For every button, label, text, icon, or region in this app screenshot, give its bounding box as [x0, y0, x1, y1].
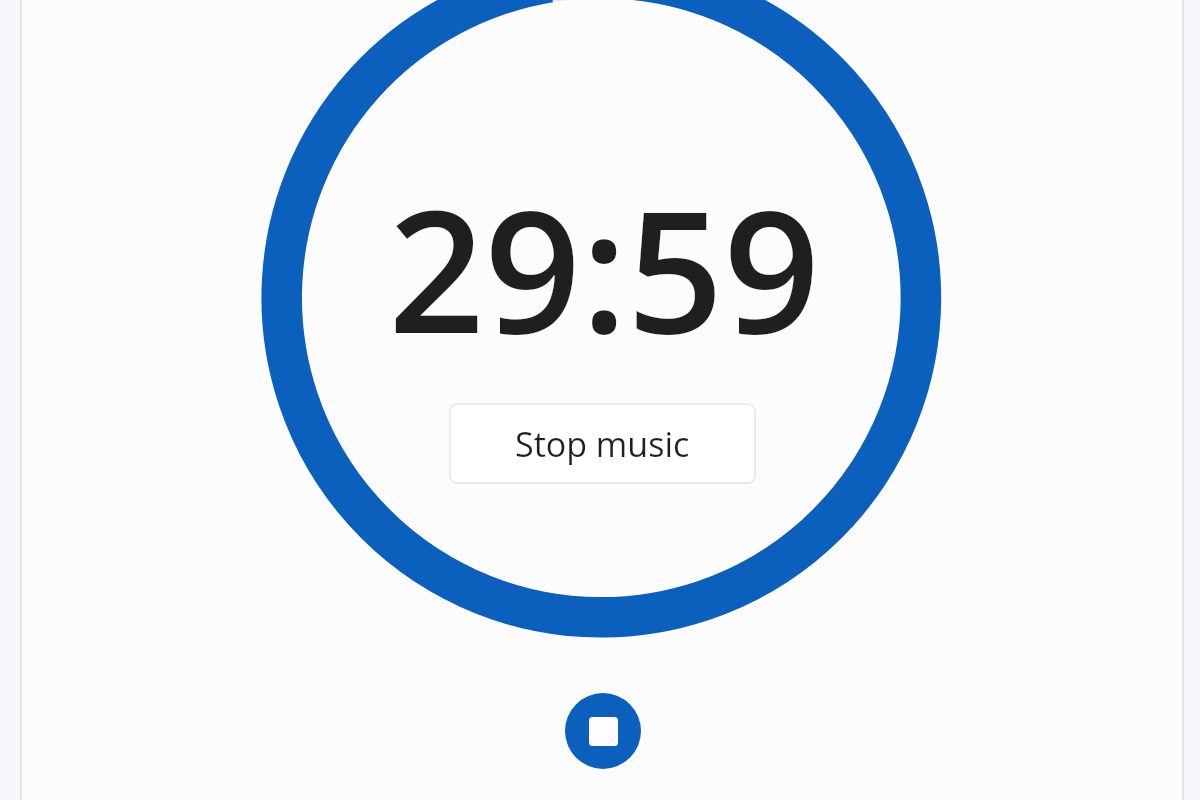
- button[interactable]: Stop timer: [565, 693, 641, 769]
- staticText: 29:59: [388, 153, 820, 382]
- button[interactable]: Stop music: [449, 403, 756, 484]
- staticText: Stop music: [515, 421, 690, 467]
